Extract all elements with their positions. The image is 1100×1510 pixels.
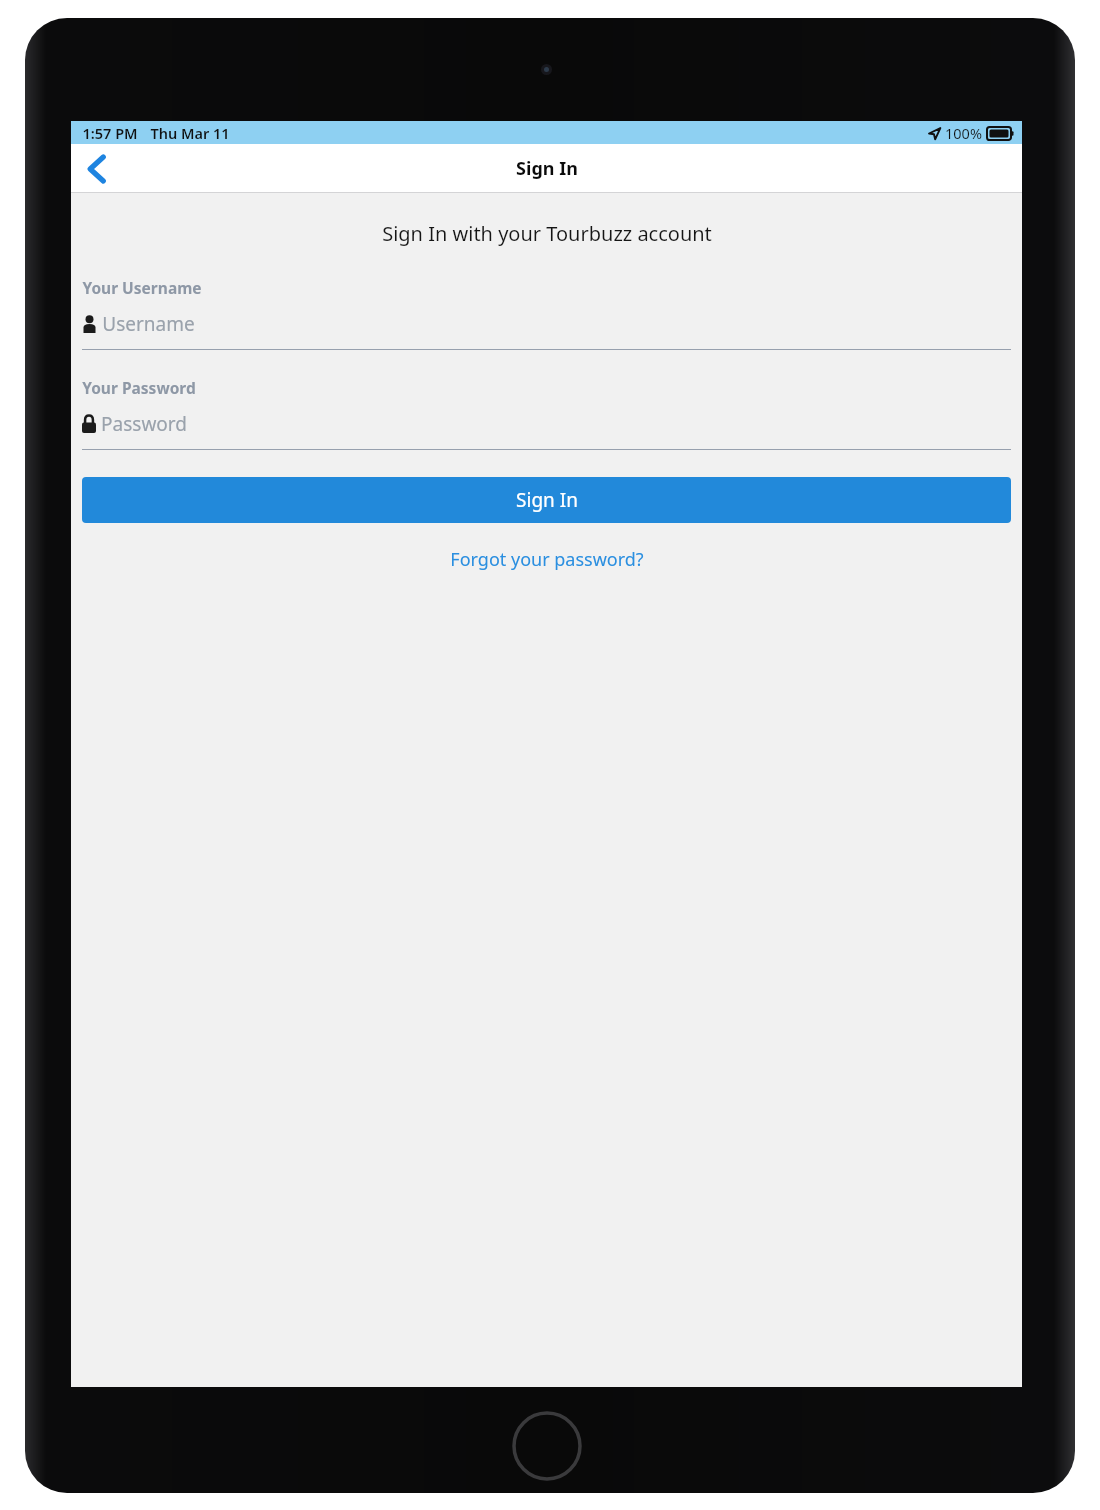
staticText: Sign In bbox=[516, 156, 578, 181]
staticText: 1:57 PM bbox=[82, 123, 138, 143]
button[interactable]: Sign In bbox=[82, 477, 1011, 523]
button[interactable]: Your Password bbox=[82, 377, 1011, 450]
staticText: Your Password bbox=[82, 377, 196, 398]
staticText: Thu Mar 11 bbox=[150, 123, 230, 143]
staticText: Password bbox=[101, 411, 187, 437]
staticText: Username bbox=[102, 311, 195, 337]
staticText: 100% bbox=[945, 123, 982, 143]
staticText: Forgot your password? bbox=[450, 547, 644, 572]
button[interactable]: Forgot your password? bbox=[436, 541, 658, 578]
staticText: Your Username bbox=[82, 277, 202, 298]
button[interactable]: Your Username bbox=[82, 277, 1011, 350]
button[interactable]: Back bbox=[71, 144, 123, 193]
staticText: Sign In with your Tourbuzz account bbox=[382, 220, 712, 247]
staticText: Sign In bbox=[516, 487, 578, 513]
